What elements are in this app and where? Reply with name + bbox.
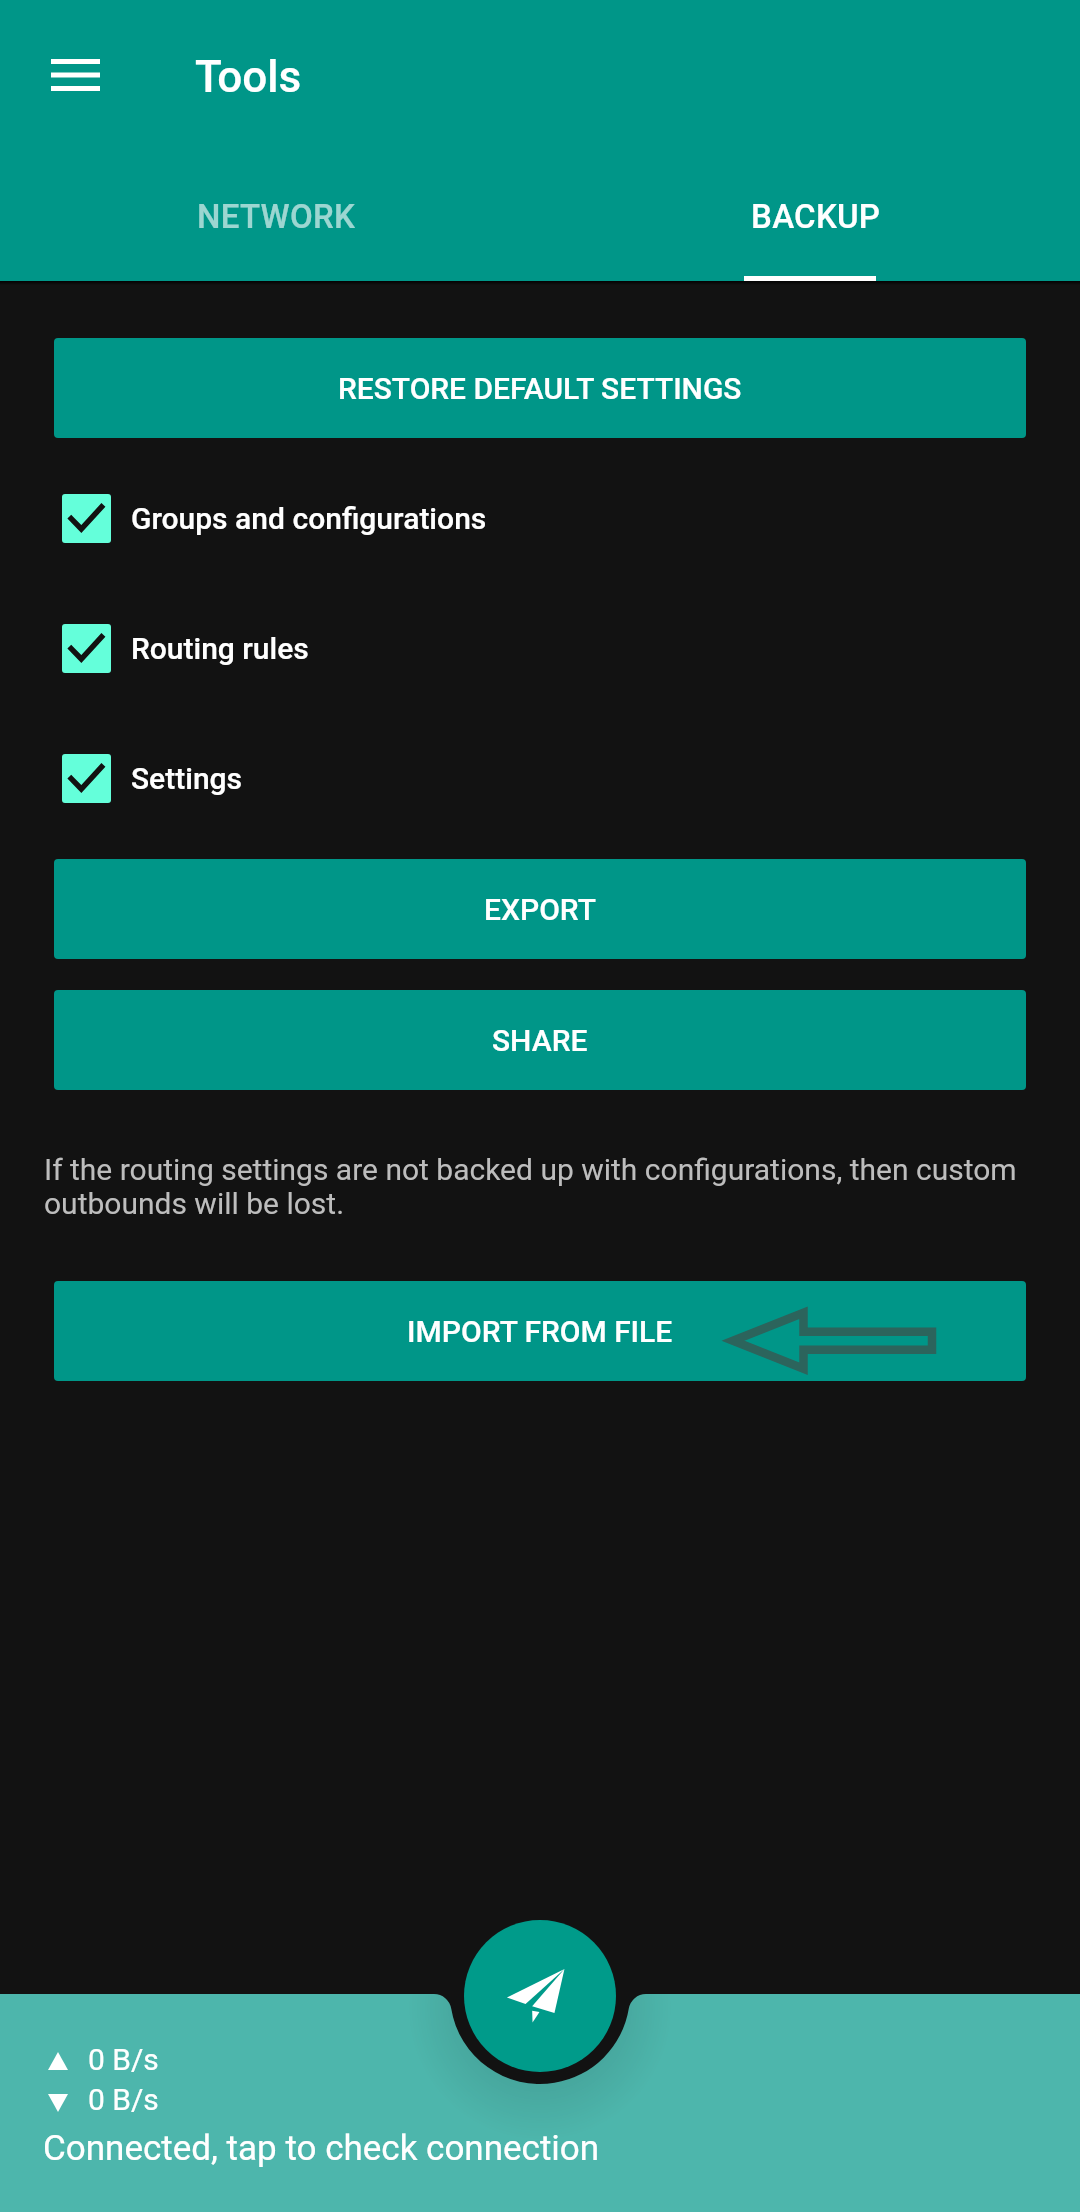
button[interactable]: RESTORE DEFAULT SETTINGS [54, 338, 1026, 438]
button[interactable]: 0 B/s [0, 1994, 1080, 2212]
button[interactable]: Routing rules [0, 623, 1080, 673]
button[interactable]: Settings [0, 753, 1080, 803]
staticText: 0 B/s [88, 2042, 159, 2077]
staticText: Connected, tap to check connection [43, 2128, 600, 2169]
staticText: BACKUP [751, 197, 881, 236]
staticText: Tools [195, 51, 302, 103]
button[interactable]: IMPORT FROM FILE [54, 1281, 1026, 1381]
staticText: Settings [131, 761, 243, 796]
staticText: 0 B/s [88, 2082, 159, 2117]
staticText: EXPORT [484, 892, 597, 927]
staticText: SHARE [492, 1023, 588, 1058]
button[interactable]: NETWORK [6, 197, 546, 280]
button[interactable]: Connect [464, 1920, 616, 2072]
staticText: Groups and configurations [131, 501, 487, 536]
staticText: Routing rules [131, 631, 309, 666]
button[interactable]: Groups and configurations [0, 493, 1080, 543]
button[interactable]: SHARE [54, 990, 1026, 1090]
button[interactable]: Open navigation menu [26, 35, 106, 115]
staticText: RESTORE DEFAULT SETTINGS [338, 371, 742, 406]
staticText: IMPORT FROM FILE [407, 1314, 673, 1349]
button[interactable]: BACKUP [546, 197, 1080, 280]
button[interactable]: EXPORT [54, 859, 1026, 959]
staticText: NETWORK [197, 197, 356, 236]
staticText: If the routing settings are not backed u… [44, 1152, 1036, 1221]
